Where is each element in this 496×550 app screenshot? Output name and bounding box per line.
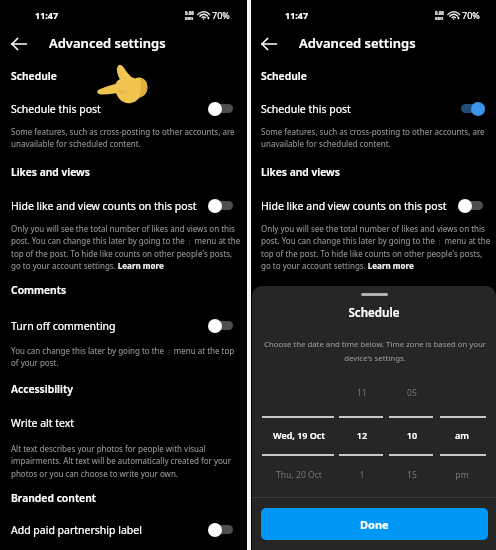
staticText: You can change this later by going to th… (11, 345, 243, 368)
button[interactable] (0, 317, 247, 337)
button[interactable] (250, 197, 496, 217)
staticText: KB/S (435, 16, 444, 21)
button[interactable] (250, 100, 496, 120)
staticText: Likes and views (261, 165, 340, 179)
staticText: Alt text describes your photos for peopl… (11, 443, 243, 479)
staticText: 0.08 (435, 10, 444, 16)
staticText: pm (439, 469, 485, 481)
button[interactable]: Toggle off (208, 198, 233, 213)
staticText: 11:47 (35, 9, 59, 21)
staticText: Hide like and view counts on this post (261, 199, 447, 213)
staticText: Wed, 19 Oct (263, 429, 335, 441)
button[interactable] (0, 100, 247, 120)
staticText: 15 (390, 469, 434, 481)
staticText: KB/S (185, 16, 194, 21)
button[interactable] (0, 197, 247, 217)
staticText: Schedule this post (11, 102, 101, 116)
button[interactable] (0, 414, 247, 434)
staticText: Some features, such as cross-posting to … (261, 126, 493, 149)
staticText: Advanced settings (49, 34, 166, 52)
staticText: Some features, such as cross-posting to … (11, 126, 243, 149)
button[interactable]: Done (261, 508, 488, 540)
staticText: Likes and views (11, 165, 90, 179)
staticText: Write alt text (11, 416, 75, 430)
staticText: Choose the date and time below. Time zon… (263, 339, 487, 364)
staticText: Accessibility (11, 382, 73, 396)
staticText: 70% (212, 9, 230, 21)
staticText: Only you will see the total number of li… (11, 223, 243, 271)
button[interactable]: Toggle off (458, 198, 483, 213)
staticText: Turn off commenting (11, 319, 116, 333)
staticText: Done (360, 517, 389, 532)
staticText: 05 (390, 387, 434, 399)
staticText: Schedule (261, 69, 307, 83)
staticText: 11 (340, 387, 384, 399)
button[interactable]: Toggle off (208, 101, 233, 116)
staticText: Thu, 20 Oct (263, 469, 335, 481)
staticText: 11:47 (285, 9, 309, 21)
button[interactable]: Back (256, 32, 282, 56)
staticText: Hide like and view counts on this post (11, 199, 197, 213)
staticText: Branded content (11, 491, 97, 505)
staticText: Comments (11, 283, 67, 297)
staticText: 0.08 (185, 10, 194, 16)
staticText: Only you will see the total number of li… (261, 223, 493, 271)
staticText: 12 (340, 429, 384, 441)
staticText: Schedule this post (261, 102, 351, 116)
staticText: 1 (340, 469, 384, 481)
button[interactable] (0, 521, 247, 541)
button[interactable]: Back (6, 32, 32, 56)
button[interactable]: Toggle on (460, 101, 485, 116)
staticText: Add paid partnership label (11, 523, 142, 537)
staticText: Schedule (252, 305, 496, 321)
staticText: Schedule (11, 69, 57, 83)
staticText: am (439, 429, 485, 441)
button[interactable]: Toggle off (208, 318, 233, 333)
staticText: 10 (390, 429, 434, 441)
staticText: 70% (462, 9, 480, 21)
button[interactable]: Toggle off (208, 522, 233, 537)
staticText: Advanced settings (299, 34, 416, 52)
